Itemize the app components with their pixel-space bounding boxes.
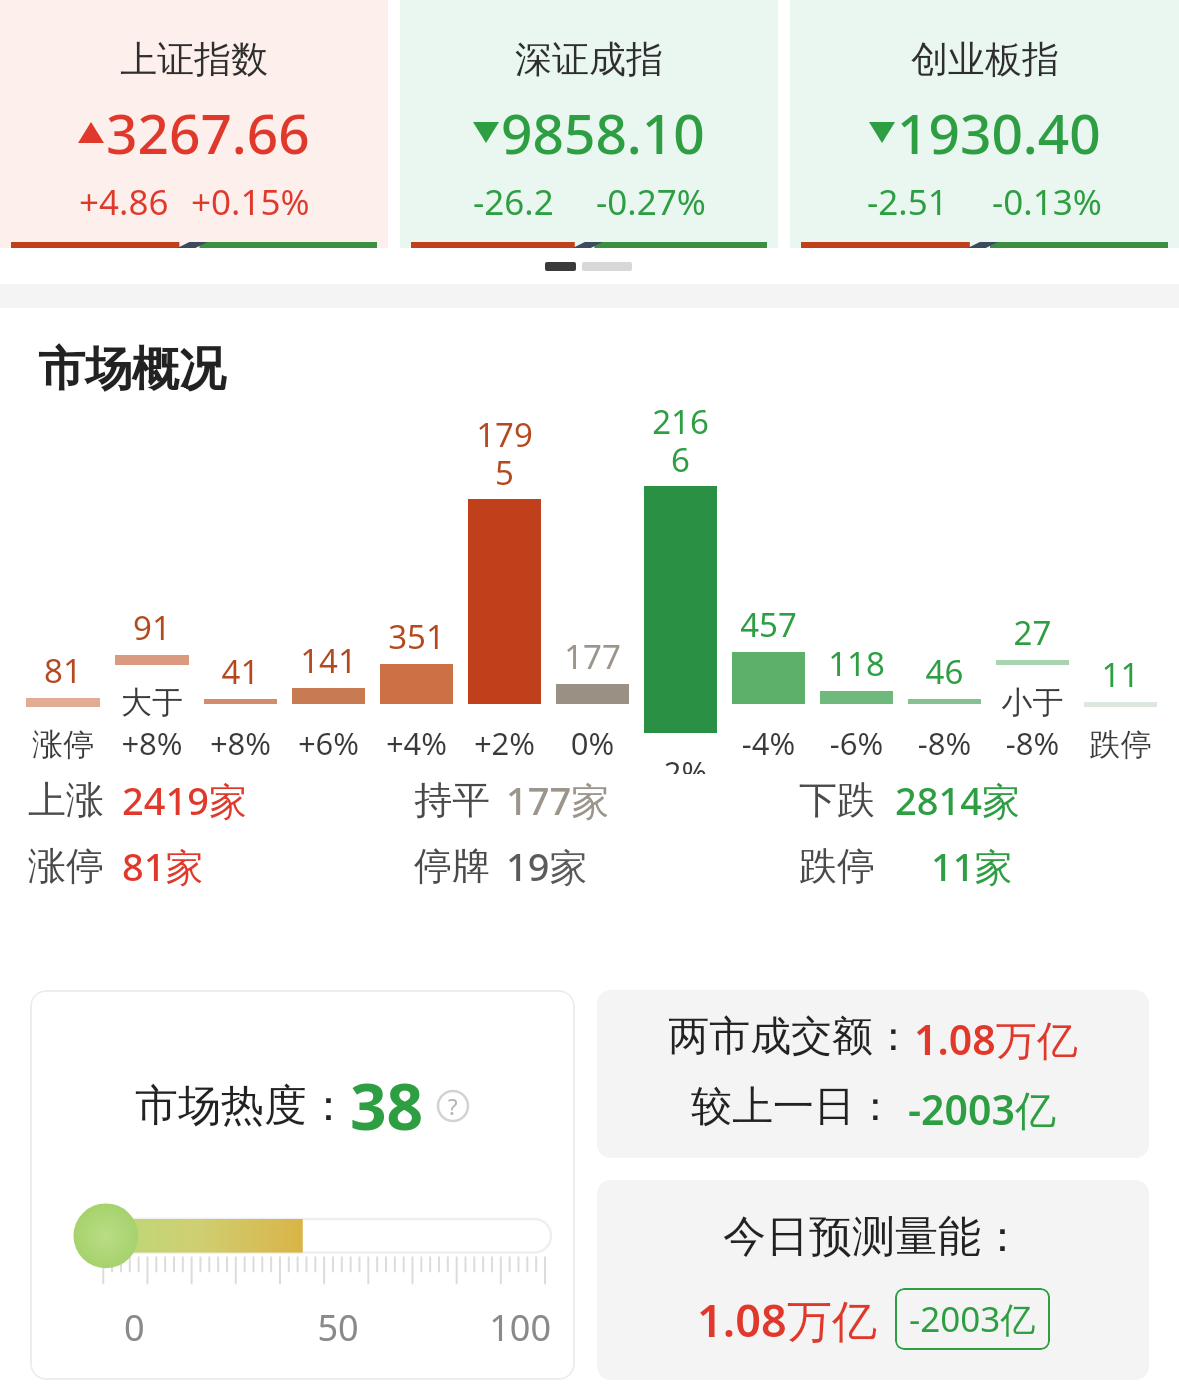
- staticText: 9858.10: [501, 95, 705, 170]
- staticText: 81家: [122, 840, 204, 892]
- staticText: +2%: [468, 722, 541, 764]
- staticText: -4%: [732, 722, 805, 764]
- staticText: 0: [124, 1303, 267, 1352]
- staticText: 81: [26, 648, 100, 693]
- staticText: -2003亿: [909, 1295, 1036, 1343]
- staticText: 11家: [931, 840, 1013, 892]
- staticText: 跌停: [799, 842, 875, 890]
- staticText: +8%: [115, 722, 189, 764]
- staticText: 91: [115, 605, 189, 650]
- staticText: 1.08万亿: [914, 1011, 1078, 1067]
- staticText: 177: [556, 634, 629, 679]
- staticText: 1.08万亿: [697, 1289, 877, 1350]
- staticText: 27: [996, 610, 1069, 655]
- staticText: 46: [908, 649, 981, 694]
- staticText: +0.15%: [191, 178, 310, 226]
- staticText: 351: [380, 614, 453, 659]
- staticText: -0.13%: [992, 178, 1102, 226]
- staticText: 上涨: [28, 776, 104, 824]
- staticText: 141: [292, 638, 365, 683]
- staticText: 2814家: [895, 774, 1020, 826]
- staticText: +4%: [380, 722, 453, 764]
- staticText: 38: [350, 1062, 424, 1149]
- staticText: 涨停: [28, 842, 104, 890]
- staticText: 118: [820, 641, 893, 686]
- staticText: ?: [448, 1091, 458, 1121]
- button[interactable]: 下跌: [799, 774, 1129, 826]
- staticText: -6%: [820, 722, 893, 764]
- button[interactable]: 深证成指: [400, 0, 778, 248]
- staticText: 市场概况: [38, 340, 226, 399]
- staticText: +4.86: [79, 178, 169, 226]
- staticText: 41: [204, 649, 277, 694]
- staticText: 11: [1084, 652, 1157, 697]
- staticText: 较上一日：: [691, 1081, 896, 1133]
- staticText: 100: [409, 1303, 551, 1352]
- staticText: 涨停: [26, 725, 100, 764]
- staticText: 停牌: [414, 842, 490, 890]
- button[interactable]: 停牌: [414, 840, 799, 892]
- staticText: 跌停: [1084, 725, 1157, 764]
- staticText: 大于: [115, 683, 189, 722]
- button[interactable]: 跌停: [799, 840, 1129, 892]
- staticText: 3267.66: [106, 95, 310, 170]
- button[interactable]: 两市成交额：: [597, 990, 1149, 1158]
- staticText: -2003亿: [908, 1081, 1056, 1137]
- staticText: -26.2: [473, 178, 554, 226]
- button[interactable]: 涨停: [28, 840, 414, 892]
- staticText: 小于: [996, 683, 1069, 722]
- staticText: 50: [267, 1303, 409, 1352]
- staticText: -2.51: [867, 178, 948, 226]
- staticText: 今日预测量能：: [723, 1210, 1024, 1264]
- button[interactable]: 市场热度：: [30, 990, 575, 1380]
- staticText: -2%: [644, 751, 717, 774]
- staticText: 0%: [556, 722, 629, 764]
- staticText: +8%: [204, 722, 277, 764]
- button[interactable]: 上证指数: [0, 0, 388, 248]
- button[interactable]: 上涨: [28, 774, 414, 826]
- staticText: 深证成指: [515, 36, 663, 83]
- staticText: 两市成交额：: [668, 1011, 914, 1063]
- staticText: 下跌: [799, 776, 875, 824]
- button[interactable]: 今日预测量能：: [597, 1180, 1149, 1380]
- button[interactable]: 创业板指: [790, 0, 1179, 248]
- staticText: 1930.40: [897, 95, 1101, 170]
- staticText: 457: [732, 602, 805, 647]
- staticText: 1795: [468, 412, 541, 494]
- staticText: 2419家: [122, 774, 247, 826]
- staticText: 177家: [506, 774, 610, 826]
- staticText: -8%: [908, 722, 981, 764]
- staticText: 持平: [414, 776, 490, 824]
- staticText: 市场热度：: [135, 1079, 350, 1133]
- staticText: 创业板指: [911, 36, 1059, 83]
- staticText: 2166: [644, 399, 717, 481]
- staticText: -8%: [996, 722, 1069, 764]
- staticText: 上证指数: [120, 36, 268, 83]
- staticText: -0.27%: [596, 178, 706, 226]
- button[interactable]: 持平: [414, 774, 799, 826]
- staticText: +6%: [292, 722, 365, 764]
- staticText: 19家: [506, 840, 588, 892]
- button[interactable]: 热度说明: [436, 1089, 470, 1123]
